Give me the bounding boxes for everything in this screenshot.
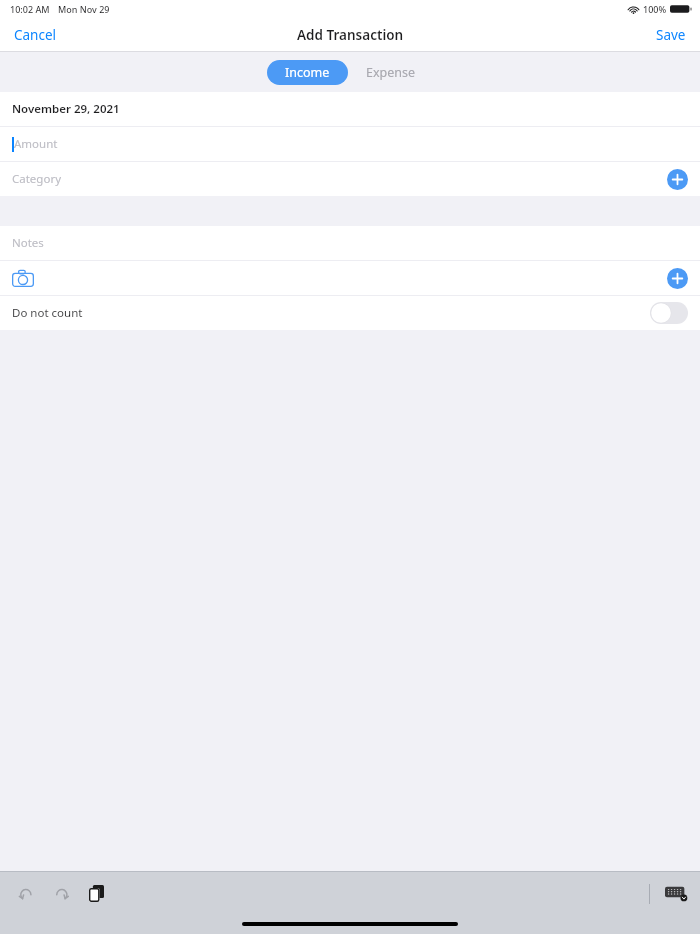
- button[interactable]: Amount: [0, 127, 700, 161]
- staticText: Mon Nov 29: [58, 3, 110, 15]
- button[interactable]: Add Category: [667, 169, 688, 190]
- staticText: Cancel: [14, 26, 57, 44]
- button[interactable]: Paste: [84, 880, 109, 907]
- button[interactable]: Hide keyboard: [662, 882, 690, 905]
- button[interactable]: Cancel: [0, 20, 71, 50]
- button[interactable]: Redo: [48, 881, 75, 906]
- staticText: Expense: [366, 64, 416, 81]
- staticText: Category: [12, 171, 62, 187]
- staticText: Save: [656, 26, 686, 44]
- staticText: Do not count: [12, 305, 83, 321]
- button[interactable]: Category: [0, 162, 700, 196]
- staticText: Amount: [14, 136, 58, 152]
- button[interactable]: Income: [267, 60, 348, 85]
- button[interactable]: Do not count: [0, 296, 700, 330]
- staticText: 100%: [643, 3, 667, 15]
- button[interactable]: November 29, 2021: [0, 92, 700, 126]
- staticText: November 29, 2021: [12, 101, 120, 117]
- staticText: Notes: [12, 235, 44, 251]
- button[interactable]: Undo: [12, 881, 39, 906]
- button[interactable]: Notes: [0, 226, 700, 260]
- button[interactable]: Add photo: [8, 266, 38, 291]
- button[interactable]: Save: [642, 20, 700, 50]
- staticText: Income: [285, 64, 330, 81]
- staticText: 10:02 AM: [10, 3, 50, 15]
- staticText: Add Transaction: [297, 26, 404, 44]
- button[interactable]: Add attachment: [667, 268, 688, 289]
- button[interactable]: Expense: [348, 60, 434, 85]
